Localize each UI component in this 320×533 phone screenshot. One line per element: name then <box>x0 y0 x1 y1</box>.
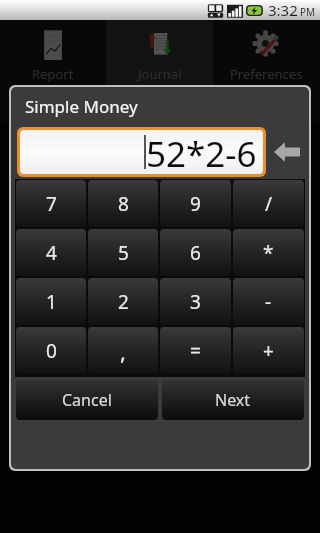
button[interactable]: + <box>233 327 304 374</box>
staticText: 5 <box>118 240 129 266</box>
button[interactable]: Next <box>162 380 304 420</box>
button[interactable]: Backspace <box>269 127 305 177</box>
button[interactable]: - <box>233 278 304 325</box>
button[interactable]: 6 <box>160 229 231 276</box>
button[interactable]: 2 <box>88 278 158 325</box>
staticText: , <box>120 336 126 366</box>
button[interactable]: = <box>160 327 231 374</box>
button[interactable]: 5 <box>88 229 158 276</box>
staticText: Next <box>215 389 251 411</box>
staticText: Journal <box>138 65 182 83</box>
staticText: Add transaction <box>32 96 129 114</box>
button[interactable]: 1 <box>16 278 86 325</box>
staticText: - <box>265 289 272 315</box>
button[interactable]: 9 <box>160 180 231 227</box>
button[interactable]: Report <box>0 20 106 88</box>
staticText: Preferences <box>230 65 303 83</box>
button[interactable]: Cancel <box>16 380 158 420</box>
staticText: + <box>263 338 274 364</box>
button[interactable]: Journal <box>106 20 213 88</box>
staticText: 52*2-6 <box>146 130 257 174</box>
button[interactable]: 8 <box>88 180 158 227</box>
staticText: 6 <box>190 240 201 266</box>
button[interactable]: 3 <box>160 278 231 325</box>
staticText: = <box>190 338 201 364</box>
staticText: 3 <box>190 289 201 315</box>
button[interactable]: 0 <box>16 327 86 374</box>
button[interactable]: , <box>88 327 158 374</box>
staticText: Cancel <box>62 389 112 411</box>
staticText: 9 <box>190 191 201 217</box>
button[interactable]: 7 <box>16 180 86 227</box>
button[interactable]: / <box>233 180 304 227</box>
button[interactable]: 52*2-6 <box>20 130 263 174</box>
staticText: 8 <box>118 191 129 217</box>
staticText: 3:32 <box>268 0 298 20</box>
staticText: 0 <box>46 338 57 364</box>
button[interactable]: Preferences <box>213 20 320 88</box>
staticText: Report <box>32 65 74 83</box>
button[interactable]: * <box>233 229 304 276</box>
staticText: Simple Money <box>25 95 138 118</box>
staticText: 7 <box>46 191 57 217</box>
staticText: PM <box>300 5 316 19</box>
staticText: 4 <box>46 240 57 266</box>
staticText: 1 <box>46 289 57 315</box>
staticText: 2 <box>118 289 129 315</box>
staticText: / <box>265 191 273 217</box>
staticText: * <box>263 240 274 266</box>
button[interactable]: 4 <box>16 229 86 276</box>
